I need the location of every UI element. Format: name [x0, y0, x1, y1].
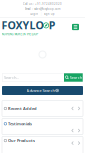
button[interactable]: Previous: [71, 106, 75, 111]
staticText: NOTHING MORE IN THE LOOP: [1, 32, 38, 36]
staticText: Search...: [4, 75, 19, 80]
staticText: Our Products: [8, 138, 35, 143]
button[interactable]: Search: [64, 73, 83, 82]
button[interactable]: Previous: [71, 128, 75, 133]
staticText: P: [49, 18, 56, 32]
button[interactable]: Recent Added: [2, 100, 83, 116]
button[interactable]: Our Products: [2, 136, 83, 153]
button[interactable]: Menu: [72, 24, 79, 30]
staticText: Login: [30, 12, 38, 16]
staticText: Email : sales@foxyloop.com: [25, 7, 60, 11]
button[interactable]: Advance Search: [2, 86, 83, 95]
button[interactable]: Next: [77, 141, 81, 146]
staticText: Advance Search: [26, 88, 54, 93]
staticText: Search: [70, 75, 82, 80]
button[interactable]: Sign Up: [44, 12, 55, 16]
staticText: Testimonials: [8, 121, 32, 126]
staticText: Recent Added: [8, 106, 37, 111]
button[interactable]: Next: [77, 106, 81, 111]
staticText: Sign Up: [44, 12, 55, 16]
staticText: FOXYLO: [1, 18, 43, 32]
button[interactable]: Login: [30, 12, 38, 16]
button[interactable]: Next: [77, 128, 81, 133]
button[interactable]: Previous: [71, 141, 75, 146]
staticText: Call us : +91-9724802020: [23, 2, 62, 6]
